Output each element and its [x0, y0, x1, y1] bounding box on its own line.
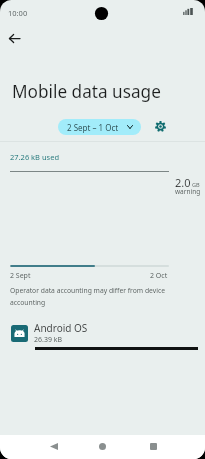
staticText: 2 Oct — [150, 271, 168, 281]
staticText: 26.39 kB — [34, 335, 62, 345]
staticText: 2.0 — [175, 175, 191, 190]
staticText: Mobile data usage — [12, 80, 161, 103]
button[interactable]: Recents — [123, 435, 205, 459]
button[interactable]: Back — [4, 28, 25, 49]
staticText: Android OS — [34, 321, 88, 335]
button[interactable]: 2 Sept – 1 Oct — [58, 119, 141, 135]
button[interactable]: Settings — [150, 116, 171, 137]
button[interactable]: Home — [82, 435, 123, 459]
staticText: warning — [175, 187, 201, 196]
button[interactable]: Back — [0, 435, 82, 459]
staticText: Operator data accounting may differ from… — [10, 286, 174, 307]
staticText: GB — [192, 181, 200, 189]
staticText: 10:00 — [8, 8, 28, 18]
staticText: 27.26 kB used — [10, 152, 60, 162]
button[interactable]: Android OS — [0, 318, 205, 348]
staticText: 2 Sept — [10, 271, 31, 281]
staticText: 2 Sept – 1 Oct — [67, 122, 119, 133]
